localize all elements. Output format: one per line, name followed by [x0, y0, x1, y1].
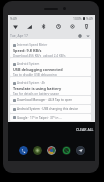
- button[interactable]: Quick setting 5: [67, 21, 78, 32]
- staticText: Android System · 4h: [17, 81, 46, 85]
- staticText: USB debugging connected: [13, 67, 63, 72]
- button[interactable]: Settings: [76, 32, 84, 39]
- staticText: Tue, Apr 17: [10, 33, 28, 38]
- staticText: 100%: [73, 16, 82, 21]
- button[interactable]: Internet Speed Meter: [10, 39, 91, 57]
- staticText: Tap to disable USB debugging: [13, 73, 57, 76]
- button[interactable]: Phone: [19, 146, 28, 155]
- staticText: Speed: 9.8 KB/s: [13, 48, 42, 53]
- button[interactable]: Camera: [33, 146, 42, 155]
- staticText: 9:49: [10, 16, 17, 21]
- staticText: Download 456 KB/s upload 2.4 KB/s: [13, 54, 66, 57]
- staticText: Android System: [17, 62, 40, 66]
- button[interactable]: Quick setting 1: [10, 21, 21, 32]
- button[interactable]: Expand quick settings: [84, 32, 92, 39]
- button[interactable]: Telegram: [76, 146, 85, 155]
- button[interactable]: Google · 17° in Taipei · 37° in ...: [10, 114, 91, 121]
- staticText: Internet Speed Meter: [17, 43, 48, 47]
- staticText: Google · 17° in Taipei · 37° in ...: [17, 116, 62, 120]
- button[interactable]: Chrome: [47, 146, 56, 155]
- staticText: Tap for details on battery usage: [13, 92, 59, 95]
- staticText: Translate is using battery: [13, 86, 62, 91]
- button[interactable]: Quick setting 3: [38, 21, 49, 32]
- staticText: 9:49: [86, 16, 93, 21]
- staticText: Download Manager · 44.8 Tap to open: [17, 98, 73, 102]
- button[interactable]: CLEAR ALL: [72, 123, 98, 136]
- staticText: CLEAR ALL: [76, 127, 94, 132]
- button[interactable]: Android System · 4h: [10, 77, 91, 95]
- button[interactable]: Android System · USB charging this devic…: [10, 105, 91, 113]
- button[interactable]: Quick setting 6: [81, 21, 92, 32]
- button[interactable]: Download Manager · 44.8 Tap to open: [10, 96, 91, 104]
- button[interactable]: WhatsApp: [62, 146, 71, 155]
- button[interactable]: Quick setting 4: [53, 21, 64, 32]
- staticText: Android System · USB charging this devic…: [17, 107, 79, 111]
- button[interactable]: Android System: [10, 58, 91, 76]
- button[interactable]: Quick setting 2: [24, 21, 35, 32]
